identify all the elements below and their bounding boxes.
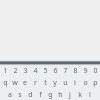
button[interactable]: 7 <box>60 65 70 77</box>
staticText: 0 <box>93 66 98 76</box>
button[interactable]: 9 <box>80 65 90 77</box>
staticText: t <box>44 78 47 88</box>
button[interactable]: a <box>5 89 15 100</box>
staticText: 4 <box>33 66 38 76</box>
staticText: u <box>63 78 68 88</box>
staticText: h <box>58 90 63 100</box>
staticText: s <box>18 90 22 100</box>
button[interactable]: w <box>10 77 20 89</box>
staticText: i <box>74 78 76 88</box>
button[interactable]: 1 <box>0 65 10 77</box>
staticText: o <box>83 78 88 88</box>
staticText: a <box>8 90 12 100</box>
button[interactable]: 4 <box>30 65 40 77</box>
button[interactable]: d <box>25 89 35 100</box>
staticText: p <box>93 78 98 88</box>
button[interactable]: 5 <box>40 65 50 77</box>
button[interactable]: l <box>85 89 95 100</box>
button[interactable]: 6 <box>50 65 60 77</box>
staticText: g <box>48 90 53 100</box>
button[interactable]: g <box>45 89 55 100</box>
staticText: 6 <box>53 66 58 76</box>
button[interactable]: r <box>30 77 40 89</box>
staticText: 9 <box>83 66 88 76</box>
button[interactable]: o <box>80 77 90 89</box>
staticText: 2 <box>13 66 18 76</box>
staticText: 3 <box>23 66 28 76</box>
staticText: 5 <box>43 66 48 76</box>
staticText: w <box>12 78 18 88</box>
staticText: k <box>78 90 82 100</box>
staticText: d <box>28 90 33 100</box>
button[interactable]: 0 <box>90 65 100 77</box>
button[interactable]: i <box>70 77 80 89</box>
staticText: f <box>39 90 42 100</box>
staticText: 8 <box>73 66 78 76</box>
button[interactable]: p <box>90 77 100 89</box>
button[interactable]: 8 <box>70 65 80 77</box>
staticText: 7 <box>63 66 68 76</box>
staticText: q <box>3 78 8 88</box>
button[interactable]: e <box>20 77 30 89</box>
button[interactable]: 3 <box>20 65 30 77</box>
button[interactable]: y <box>50 77 60 89</box>
button[interactable]: q <box>0 77 10 89</box>
staticText: j <box>69 90 71 100</box>
staticText: 1 <box>3 66 8 76</box>
button[interactable]: s <box>15 89 25 100</box>
staticText: y <box>53 78 57 88</box>
button[interactable]: k <box>75 89 85 100</box>
button[interactable]: 2 <box>10 65 20 77</box>
button[interactable]: u <box>60 77 70 89</box>
staticText: e <box>23 78 27 88</box>
staticText: r <box>34 78 37 88</box>
button[interactable]: t <box>40 77 50 89</box>
button[interactable]: j <box>65 89 75 100</box>
staticText: l <box>89 90 91 100</box>
button[interactable]: f <box>35 89 45 100</box>
button[interactable]: h <box>55 89 65 100</box>
